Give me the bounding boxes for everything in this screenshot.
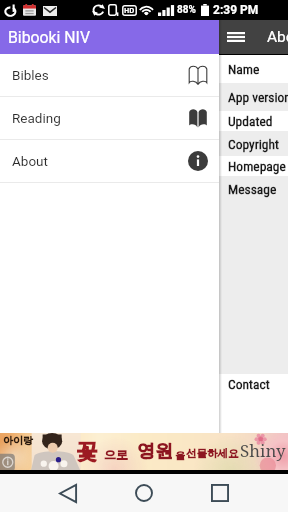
staticText: Contact — [228, 376, 270, 392]
button[interactable]: About — [0, 140, 219, 182]
staticText: Homepage — [228, 158, 286, 174]
staticText: 을 — [175, 449, 185, 462]
staticText: 으로 — [104, 447, 128, 462]
button[interactable]: Copyright — [0, 131, 288, 156]
button[interactable]: Homepage — [0, 156, 288, 176]
staticText: Updated — [228, 113, 273, 129]
staticText: 선물하세요 — [186, 447, 239, 460]
button[interactable]: Message — [0, 176, 288, 201]
staticText: 영원 — [137, 440, 173, 463]
button[interactable]: Updated — [0, 111, 288, 131]
button[interactable]: Open navigation drawer — [219, 20, 253, 54]
staticText: Copyright — [228, 136, 280, 152]
staticText: HD — [124, 6, 135, 16]
staticText: 아이랑 — [3, 434, 33, 447]
button[interactable]: Recents — [196, 474, 244, 512]
button[interactable]: Home — [120, 474, 168, 512]
button[interactable]: Name — [0, 55, 288, 83]
staticText: About — [267, 28, 288, 46]
staticText: 꽃 — [76, 438, 98, 466]
button[interactable]: App version — [0, 83, 288, 111]
staticText: 2:39 PM — [213, 3, 259, 17]
staticText: 88% — [177, 4, 196, 16]
staticText: Reading — [12, 110, 61, 126]
staticText: Bibooki NIV — [8, 28, 90, 47]
button[interactable]: Back — [44, 474, 92, 512]
staticText: Name — [228, 61, 260, 77]
staticText: App version — [228, 89, 288, 105]
button[interactable]: Reading — [0, 97, 219, 139]
staticText: Shiny — [240, 439, 286, 462]
staticText: About — [12, 153, 48, 169]
staticText: Message — [228, 181, 277, 197]
button[interactable]: Contact — [0, 374, 288, 394]
staticText: Bibles — [12, 67, 49, 83]
button[interactable]: 아이랑 — [0, 433, 288, 470]
button[interactable]: Bibles — [0, 54, 219, 96]
